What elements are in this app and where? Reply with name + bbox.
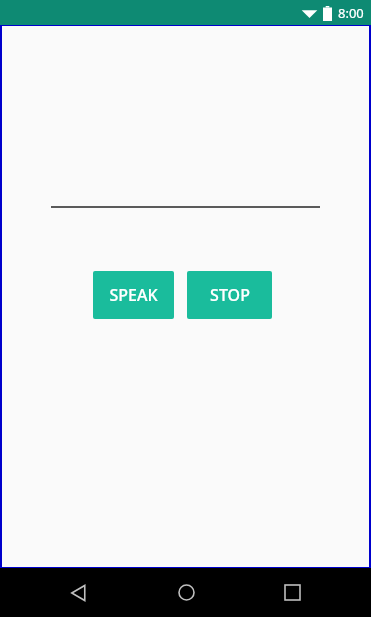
button[interactable]: Home xyxy=(159,568,213,617)
staticText: SPEAK xyxy=(109,284,158,306)
button[interactable]: Recent apps xyxy=(265,568,319,617)
button[interactable]: STOP xyxy=(187,271,272,319)
staticText: STOP xyxy=(210,284,250,306)
staticText: 8:00 xyxy=(338,4,364,22)
button[interactable]: Back xyxy=(52,568,106,617)
button[interactable]: SPEAK xyxy=(93,271,174,319)
